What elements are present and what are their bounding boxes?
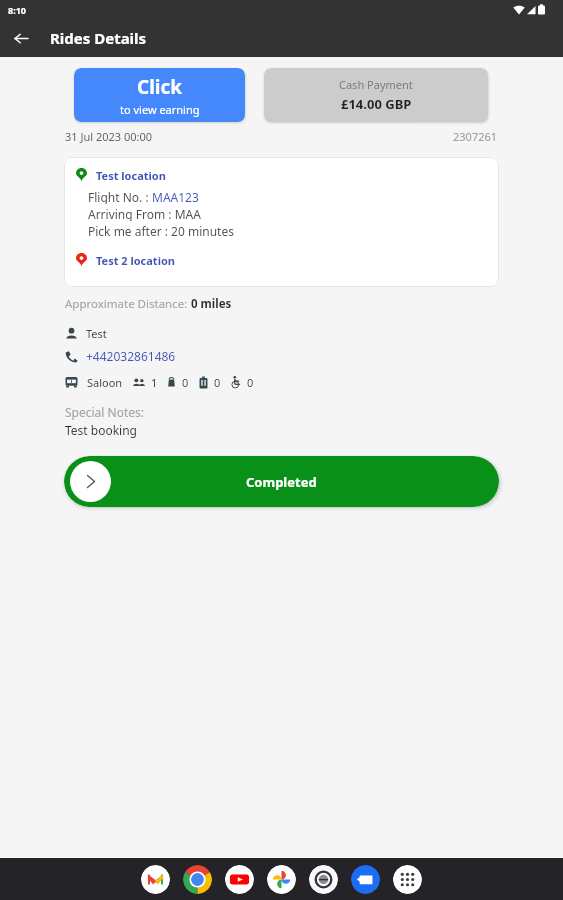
- button[interactable]: Messages: [351, 865, 380, 894]
- staticText: 0: [214, 375, 221, 390]
- staticText: 8:10: [8, 4, 26, 16]
- staticText: Click: [137, 74, 183, 100]
- staticText: +442032861486: [86, 348, 176, 364]
- button[interactable]: YouTube: [225, 865, 254, 894]
- staticText: 0: [182, 375, 189, 390]
- staticText: Rides Details: [50, 28, 147, 48]
- staticText: to view earning: [120, 102, 200, 117]
- button[interactable]: Chrome: [183, 865, 212, 894]
- staticText: £14.00 GBP: [341, 95, 412, 113]
- button[interactable]: Test location: [76, 167, 487, 183]
- staticText: Test: [86, 326, 107, 341]
- button[interactable]: Camera: [309, 865, 338, 894]
- staticText: Test 2 location: [96, 253, 175, 268]
- staticText: 2307261: [453, 129, 498, 144]
- button[interactable]: Test 2 location: [76, 252, 487, 268]
- staticText: Test location: [96, 168, 166, 183]
- staticText: Test booking: [65, 422, 138, 438]
- staticText: 0 miles: [191, 296, 232, 312]
- button[interactable]: All apps: [393, 865, 422, 894]
- staticText: 31 Jul 2023 00:00: [65, 129, 153, 144]
- staticText: 0: [247, 375, 254, 390]
- staticText: Approximate Distance:: [65, 296, 191, 312]
- button[interactable]: Back: [6, 23, 36, 53]
- button[interactable]: Click: [74, 68, 245, 122]
- staticText: Cash Payment: [339, 77, 413, 92]
- staticText: Arriving From : MAA: [88, 206, 201, 221]
- staticText: Saloon: [87, 375, 123, 390]
- button[interactable]: Gmail: [141, 865, 170, 894]
- button[interactable]: Cash Payment: [264, 68, 488, 122]
- staticText: Pick me after : 20 minutes: [88, 223, 234, 238]
- button[interactable]: Completed: [64, 456, 499, 507]
- staticText: MAA123: [152, 189, 199, 204]
- staticText: Flight No. :: [88, 189, 152, 204]
- button[interactable]: Photos: [267, 865, 296, 894]
- staticText: 1: [151, 375, 158, 390]
- staticText: Special Notes:: [65, 404, 144, 420]
- button[interactable]: +442032861486: [65, 348, 176, 364]
- staticText: Completed: [246, 473, 317, 491]
